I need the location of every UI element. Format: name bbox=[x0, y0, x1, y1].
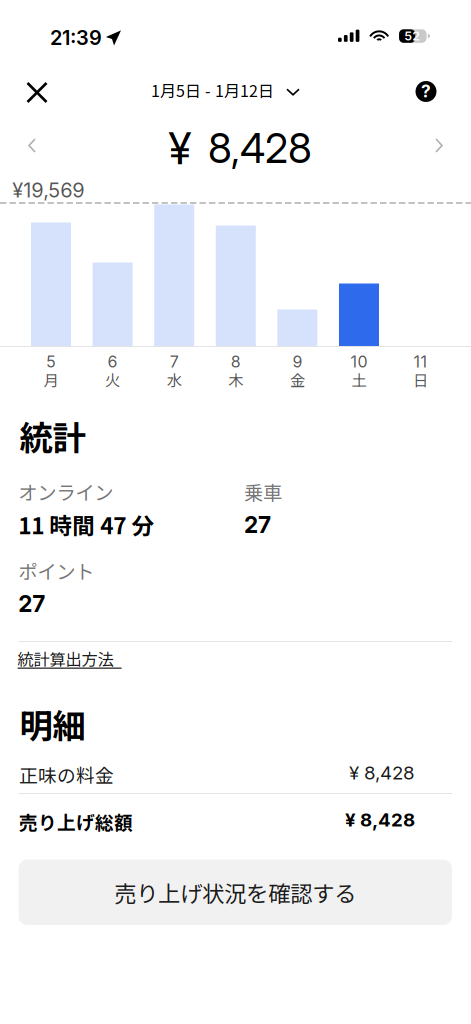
staticText: 明細 bbox=[19, 699, 85, 748]
staticText: ¥ bbox=[168, 122, 192, 175]
staticText: 7 bbox=[170, 352, 179, 371]
button[interactable]: Next week bbox=[436, 139, 442, 152]
staticText: 10 bbox=[350, 352, 367, 371]
staticText: ポイント bbox=[18, 556, 94, 584]
staticText: 火 bbox=[105, 368, 120, 391]
staticText: 木 bbox=[228, 368, 243, 391]
staticText: 乗車 bbox=[244, 477, 282, 505]
staticText: ? bbox=[421, 81, 431, 102]
button[interactable]: Previous week bbox=[29, 139, 35, 152]
staticText: 土 bbox=[351, 368, 366, 391]
staticText: 1月5日 - 1月12日 bbox=[151, 78, 274, 102]
staticText: 月 bbox=[43, 368, 58, 391]
staticText: 8,428 bbox=[208, 124, 312, 173]
staticText: 正味の料金 bbox=[19, 761, 114, 788]
staticText: オンライン bbox=[18, 477, 113, 505]
staticText: 9 bbox=[292, 352, 302, 371]
button[interactable]: Help bbox=[415, 81, 436, 102]
button[interactable]: 統計算出方法 bbox=[18, 647, 122, 669]
staticText: 5 bbox=[46, 352, 56, 371]
staticText: ¥ 8,428 bbox=[345, 808, 415, 831]
staticText: 8 bbox=[231, 352, 241, 371]
button[interactable]: 売り上げ状況を確認する bbox=[18, 859, 452, 925]
button[interactable]: Close bbox=[27, 83, 46, 102]
staticText: 金 bbox=[290, 368, 305, 391]
staticText: 52 bbox=[404, 28, 420, 43]
staticText: 11 時間 47 分 bbox=[18, 508, 154, 541]
button[interactable]: 1月5日 - 1月12日 bbox=[151, 80, 299, 100]
staticText: 水 bbox=[167, 368, 182, 391]
staticText: 27 bbox=[244, 511, 271, 538]
staticText: 11 bbox=[414, 352, 428, 371]
staticText: 27 bbox=[18, 590, 45, 617]
staticText: ¥19,569 bbox=[12, 178, 84, 202]
staticText: ¥ 8,428 bbox=[349, 761, 415, 784]
staticText: 日 bbox=[413, 368, 428, 391]
staticText: 統計 bbox=[19, 411, 85, 460]
staticText: 6 bbox=[108, 352, 118, 371]
staticText: 21:39 bbox=[50, 25, 102, 50]
staticText: 売り上げ状況を確認する bbox=[114, 876, 356, 908]
staticText: 売り上げ総額 bbox=[19, 808, 133, 835]
staticText: 統計算出方法 bbox=[18, 647, 114, 671]
